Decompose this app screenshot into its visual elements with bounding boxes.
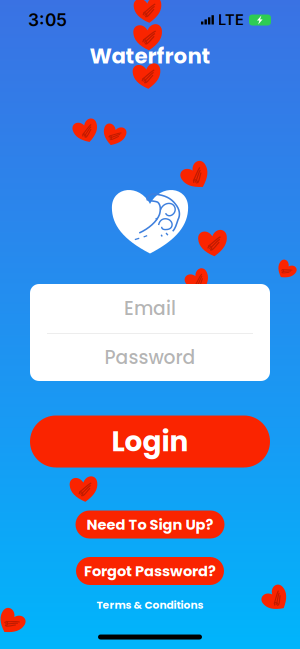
button[interactable]: Terms & Conditions (96, 597, 203, 612)
button[interactable]: Need To Sign Up? (75, 510, 224, 538)
button[interactable]: Forgot Password? (76, 557, 224, 585)
staticText: Waterfront (89, 41, 210, 71)
staticText: Need To Sign Up? (86, 514, 213, 535)
button[interactable]: Login (30, 415, 270, 467)
staticText: Forgot Password? (84, 561, 216, 581)
staticText: Login (111, 422, 188, 461)
staticText: Terms & Conditions (96, 597, 203, 612)
staticText: Password (104, 344, 195, 370)
staticText: Email (124, 295, 176, 321)
staticText: 3:05 (28, 9, 67, 30)
staticText: LTE (218, 11, 244, 29)
